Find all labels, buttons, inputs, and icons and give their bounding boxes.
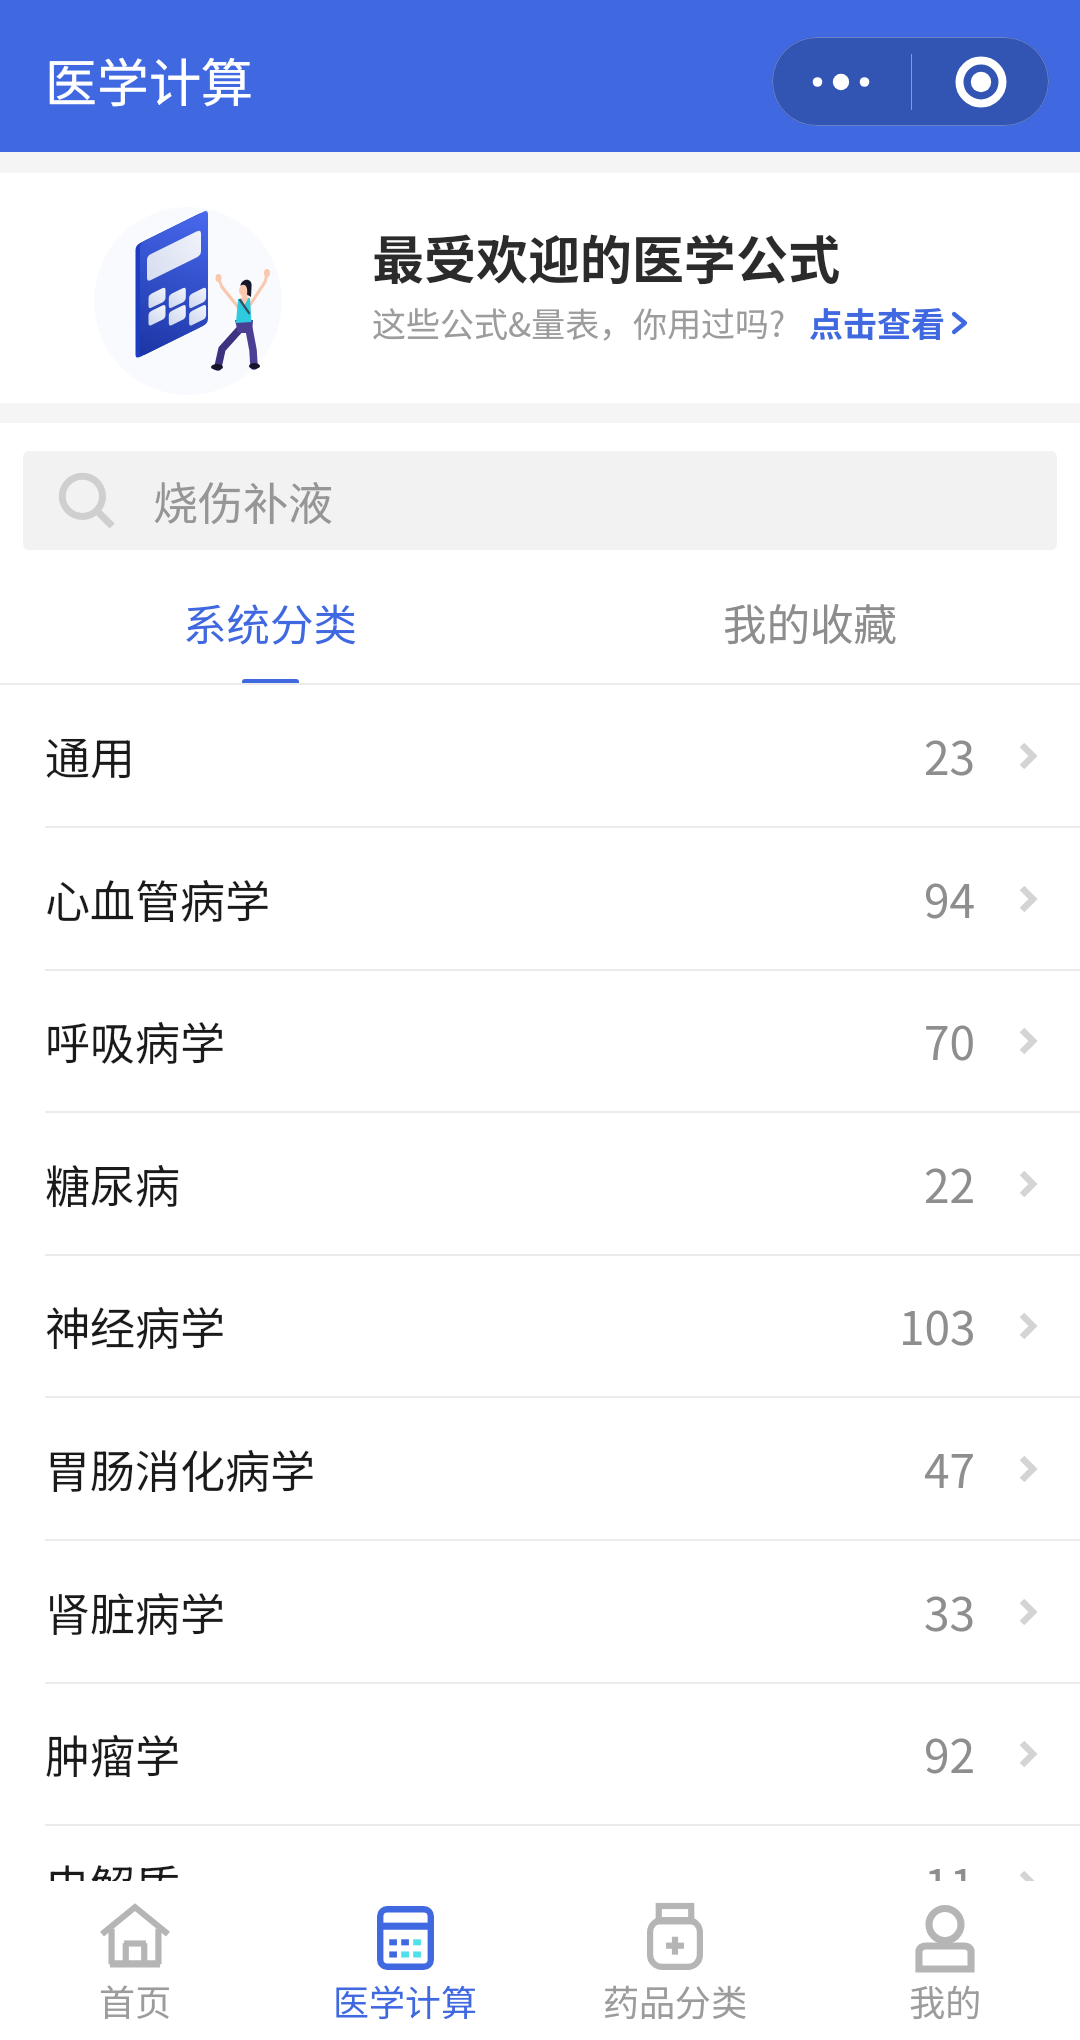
staticText: 33: [924, 1578, 976, 1645]
button[interactable]: 最受欢迎的医学公式: [0, 173, 1080, 403]
button[interactable]: 心血管病学: [0, 828, 1080, 971]
button[interactable]: More options: [772, 37, 911, 126]
staticText: 胃肠消化病学: [45, 1436, 316, 1501]
button[interactable]: 肾脏病学: [0, 1541, 1080, 1684]
button[interactable]: 首页: [0, 1881, 270, 2040]
button[interactable]: 肿瘤学: [0, 1683, 1080, 1826]
button[interactable]: 系统分类: [0, 550, 540, 683]
staticText: 22: [924, 1150, 976, 1217]
staticText: 47: [924, 1435, 976, 1502]
button[interactable]: 神经病学: [0, 1255, 1080, 1398]
staticText: 电解质: [45, 1851, 181, 1916]
staticText: 点击查看: [809, 298, 945, 347]
staticText: 11: [924, 1850, 976, 1917]
staticText: 系统分类: [183, 591, 357, 654]
button[interactable]: 糖尿病: [0, 1113, 1080, 1256]
staticText: 92: [924, 1720, 976, 1787]
staticText: 94: [924, 865, 976, 932]
staticText: 103: [899, 1292, 976, 1359]
button[interactable]: 药品分类: [540, 1881, 810, 2040]
staticText: 药品分类: [603, 1974, 748, 2026]
staticText: 这些公式&量表，你用过吗?: [372, 298, 786, 347]
staticText: 神经病学: [45, 1293, 226, 1358]
staticText: 23: [924, 722, 976, 789]
staticText: 烧伤补液: [153, 468, 334, 533]
staticText: 肾脏病学: [45, 1579, 226, 1644]
staticText: 呼吸病学: [45, 1008, 226, 1073]
staticText: 医学计算: [45, 42, 254, 117]
staticText: 心血管病学: [45, 866, 271, 931]
staticText: 医学计算: [333, 1974, 478, 2026]
staticText: 我的: [909, 1974, 982, 2026]
staticText: 通用: [45, 723, 136, 788]
button[interactable]: 烧伤补液: [23, 451, 1057, 550]
button[interactable]: 我的: [810, 1881, 1080, 2040]
button[interactable]: 胃肠消化病学: [0, 1398, 1080, 1541]
staticText: 我的收藏: [723, 591, 897, 654]
staticText: 最受欢迎的医学公式: [372, 219, 841, 294]
button[interactable]: 通用: [0, 685, 1080, 828]
button[interactable]: 呼吸病学: [0, 970, 1080, 1113]
staticText: 糖尿病: [45, 1151, 181, 1216]
staticText: 肿瘤学: [45, 1721, 181, 1786]
button[interactable]: 我的收藏: [540, 550, 1080, 683]
staticText: 首页: [99, 1974, 172, 2026]
staticText: 70: [924, 1007, 976, 1074]
button[interactable]: Close mini program: [912, 37, 1049, 126]
button[interactable]: 医学计算: [270, 1881, 540, 2040]
button[interactable]: 电解质: [0, 1813, 1080, 1956]
